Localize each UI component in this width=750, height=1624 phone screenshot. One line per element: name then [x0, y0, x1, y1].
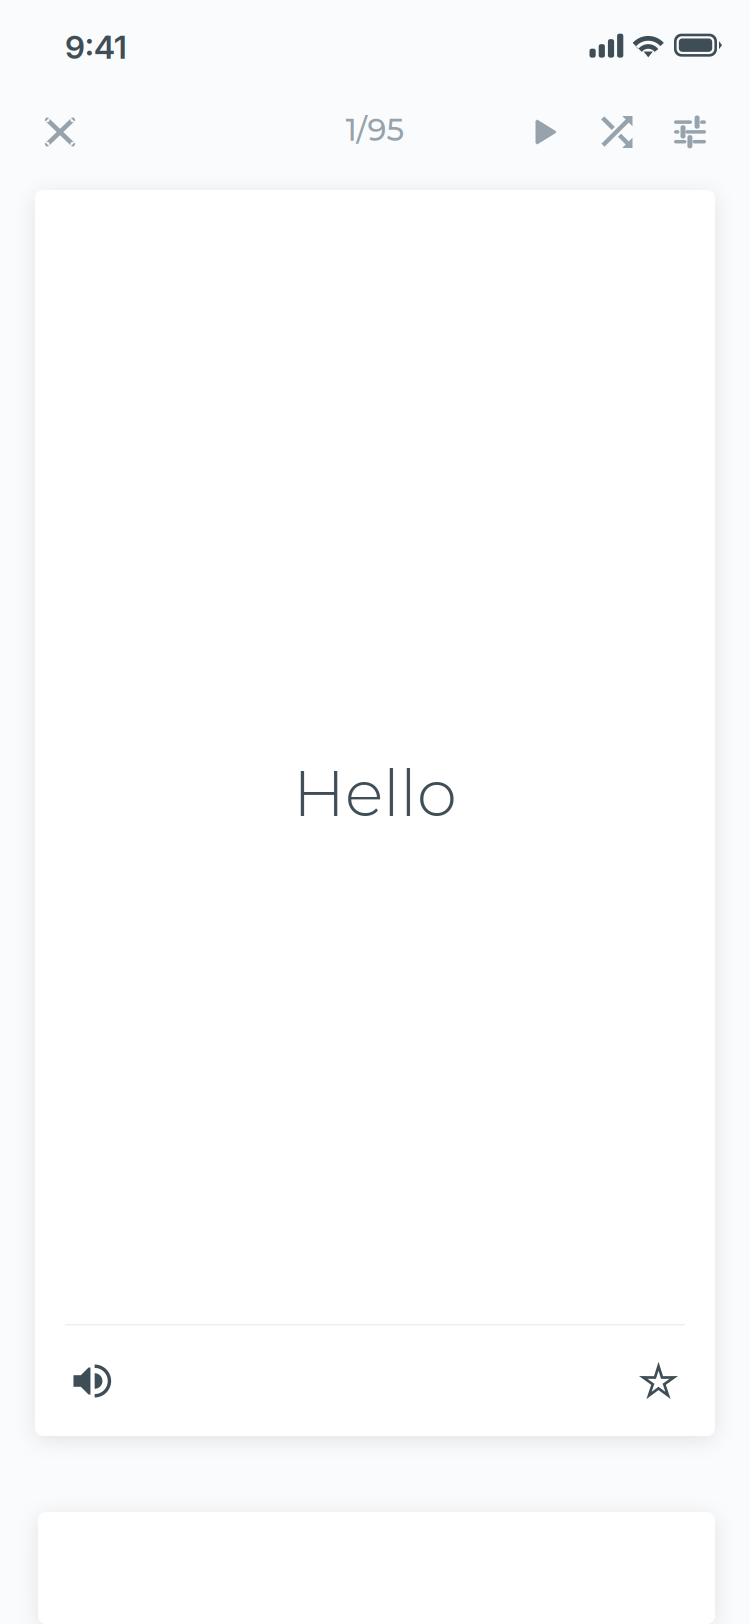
staticText: Hello	[293, 754, 457, 832]
button[interactable]: Play	[518, 101, 574, 163]
button[interactable]: Play audio	[56, 1345, 128, 1417]
button[interactable]: Star	[622, 1346, 694, 1418]
button[interactable]: Close	[29, 101, 91, 163]
button[interactable]: Options	[662, 101, 718, 163]
button[interactable]: Shuffle	[589, 101, 645, 163]
staticText: 9:41	[65, 28, 127, 66]
staticText: 1/95	[345, 111, 404, 148]
